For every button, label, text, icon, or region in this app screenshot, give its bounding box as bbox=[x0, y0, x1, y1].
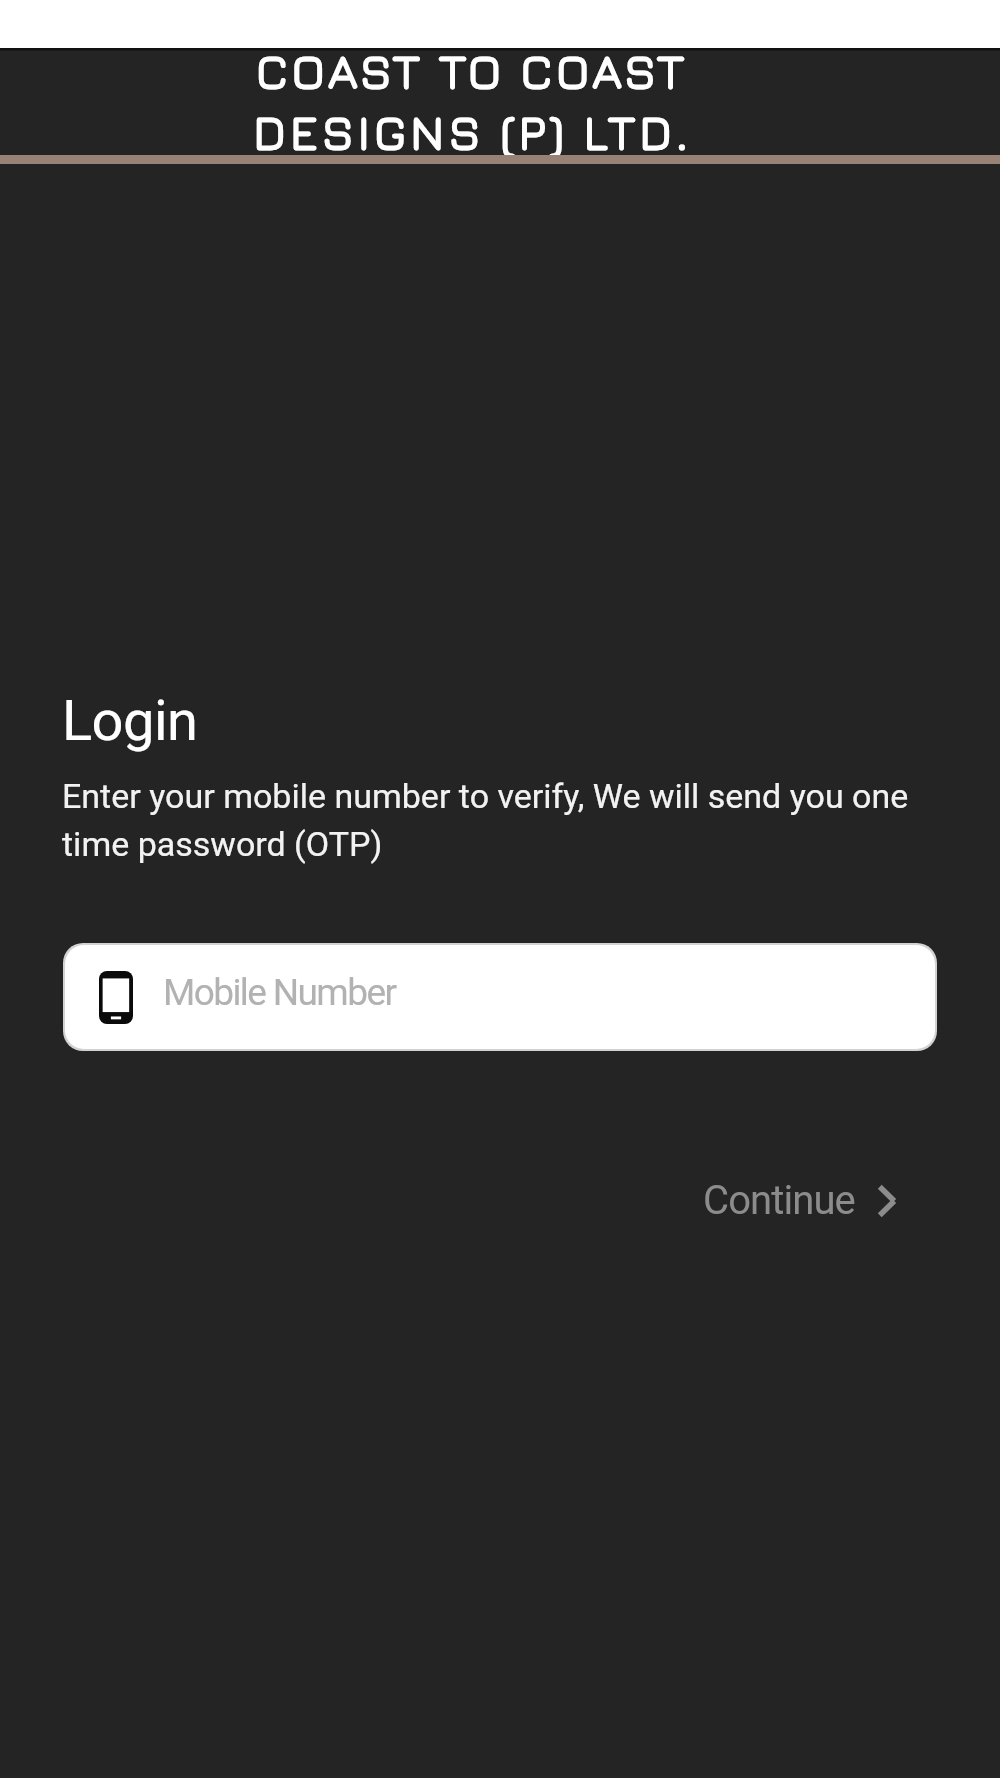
other: Mobile phone bbox=[99, 971, 133, 1024]
other: Continue bbox=[877, 1184, 897, 1218]
staticText: Enter your mobile number to verify, We w… bbox=[62, 776, 926, 864]
staticText: Login bbox=[62, 688, 198, 754]
staticText: Mobile Number bbox=[163, 971, 396, 1014]
button[interactable]: Mobile phone bbox=[65, 945, 935, 1049]
staticText: Continue bbox=[703, 1177, 855, 1224]
button[interactable]: Continue bbox=[679, 1161, 1000, 1240]
